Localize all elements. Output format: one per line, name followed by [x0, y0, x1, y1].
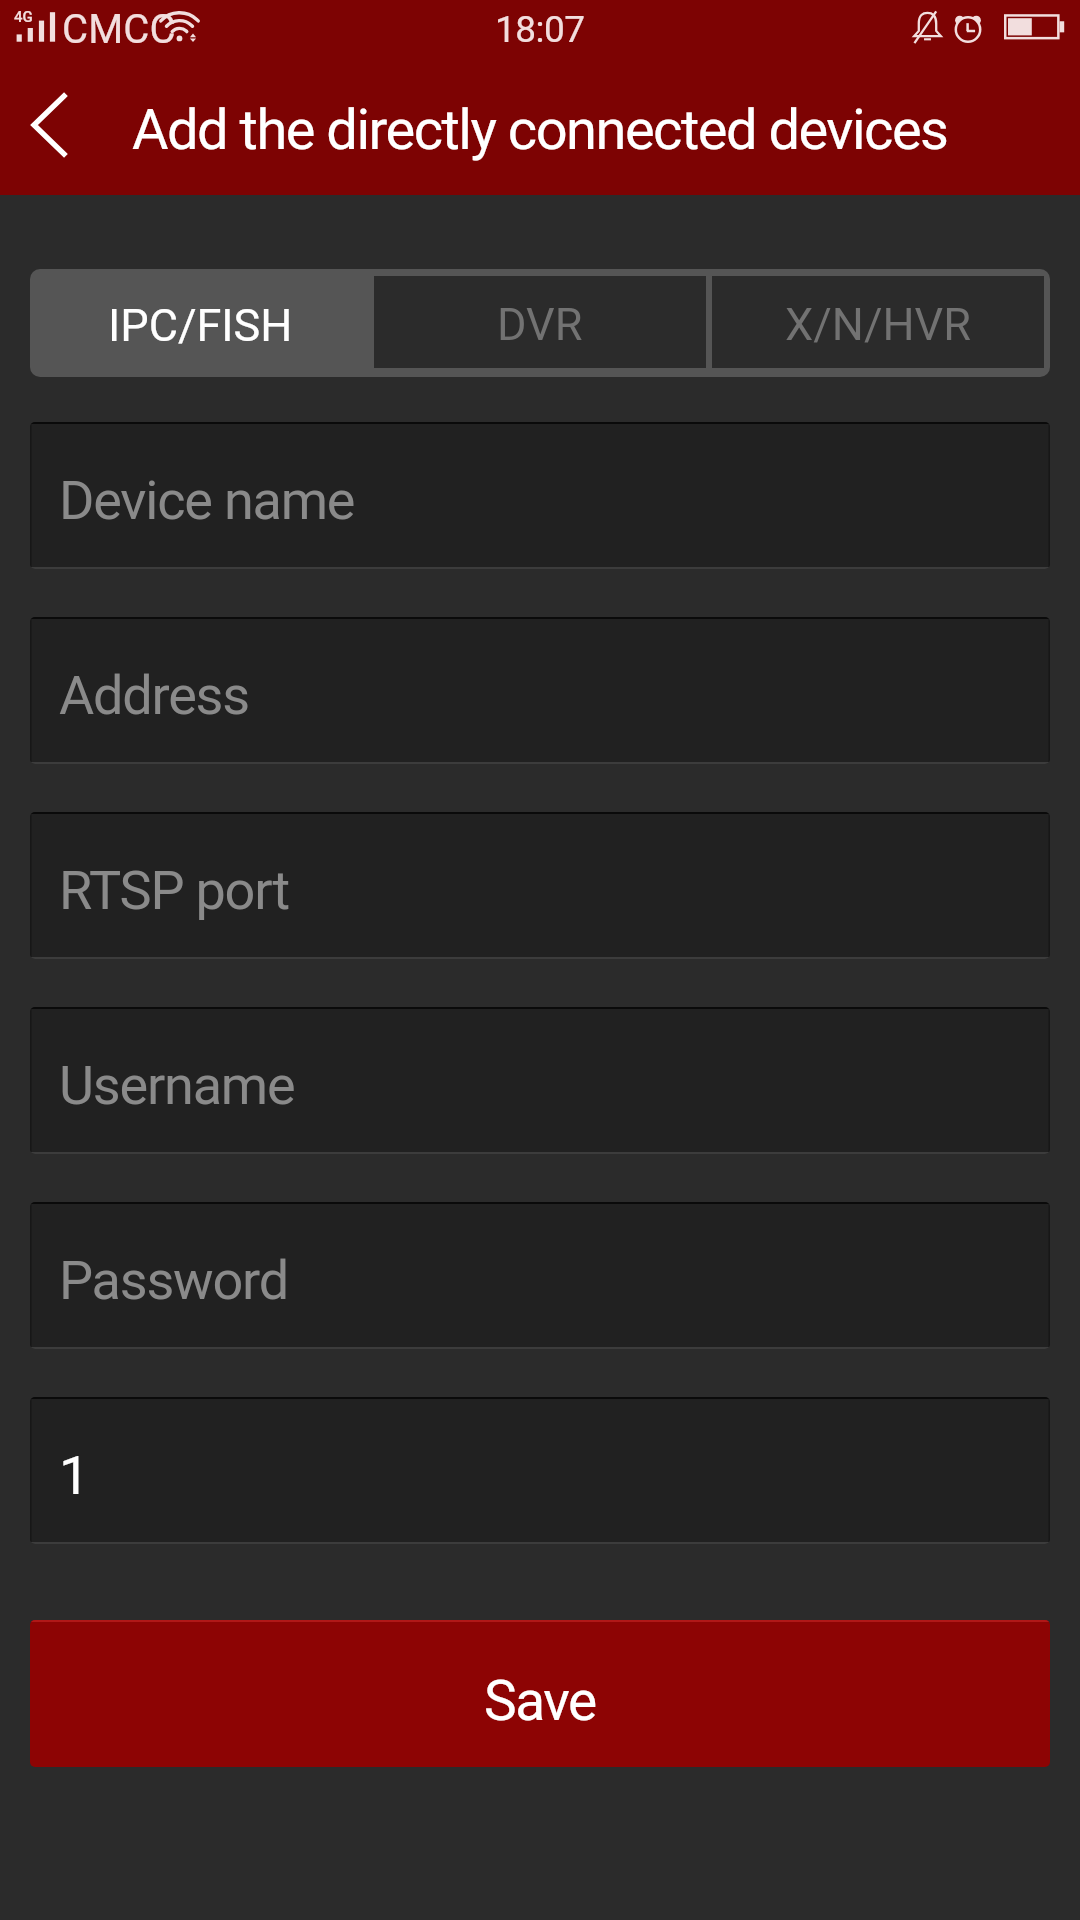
button[interactable]: Address — [30, 617, 1050, 764]
staticText: Device name — [59, 469, 355, 532]
button[interactable]: RTSP port — [30, 812, 1050, 959]
button[interactable]: Password — [30, 1202, 1050, 1349]
staticText: DVR — [497, 298, 583, 351]
staticText: 4G — [14, 8, 33, 26]
button[interactable]: X/N/HVR — [712, 276, 1044, 368]
button[interactable]: Back — [0, 55, 100, 195]
staticText: IPC/FISH — [108, 299, 293, 352]
staticText: Username — [59, 1054, 295, 1117]
button[interactable]: Username — [30, 1007, 1050, 1154]
staticText: RTSP port — [59, 859, 290, 922]
staticText: 18:07 — [495, 8, 585, 51]
button[interactable]: 1 — [30, 1397, 1050, 1544]
staticText: Save — [484, 1669, 596, 1733]
staticText: CMCC — [62, 6, 176, 53]
button[interactable]: Device name — [30, 422, 1050, 569]
staticText: X/N/HVR — [785, 298, 971, 351]
staticText: Address — [59, 664, 249, 727]
staticText: 1 — [59, 1444, 89, 1507]
staticText: Password — [59, 1249, 288, 1312]
button[interactable]: IPC/FISH — [30, 269, 370, 377]
button[interactable]: DVR — [374, 276, 706, 368]
button[interactable]: Save — [30, 1620, 1050, 1767]
staticText: Add the directly connected devices — [132, 97, 948, 163]
